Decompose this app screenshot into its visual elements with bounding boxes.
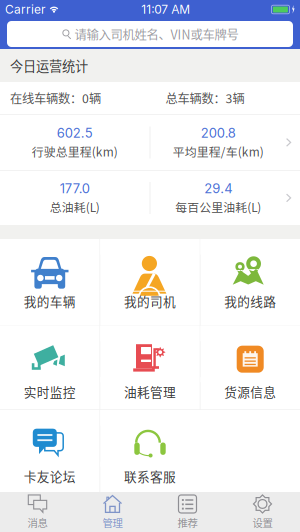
staticText: 卡友论坛 <box>24 467 76 485</box>
staticText: 602.5 <box>57 125 93 141</box>
staticText: 每百公里油耗(L) <box>175 198 261 215</box>
staticText: 货源信息 <box>224 382 276 400</box>
button[interactable]: 请输入司机姓名、VIN或车牌号 <box>7 21 293 47</box>
button[interactable]: 推荐 <box>150 492 225 532</box>
staticText: 推荐 <box>177 515 197 530</box>
button[interactable]: 设置 <box>225 492 300 532</box>
button[interactable]: 我的司机 <box>100 239 200 325</box>
staticText: 200.8 <box>201 125 236 141</box>
staticText: Carrier <box>5 2 46 17</box>
staticText: 消息 <box>27 515 47 530</box>
button[interactable]: 卡友论坛 <box>0 410 100 492</box>
staticText: 在线车辆数：0辆 <box>10 89 101 107</box>
staticText: 总车辆数：3辆 <box>165 89 244 107</box>
staticText: 29.4 <box>204 180 232 196</box>
staticText: 平均里程/车(km) <box>173 143 264 160</box>
staticText: 今日运营统计 <box>10 56 88 75</box>
button[interactable]: 我的车辆 <box>0 239 100 325</box>
staticText: 设置 <box>252 515 272 530</box>
staticText: 我的线路 <box>224 292 276 310</box>
staticText: 油耗管理 <box>124 382 176 400</box>
staticText: 管理 <box>102 515 122 530</box>
staticText: 177.0 <box>60 180 90 196</box>
staticText: 总油耗(L) <box>50 198 100 215</box>
button[interactable]: 实时监控 <box>0 325 100 409</box>
button[interactable]: 管理 <box>75 492 150 532</box>
button[interactable]: 消息 <box>0 492 75 532</box>
button[interactable]: 我的线路 <box>200 239 300 325</box>
staticText: 行驶总里程(km) <box>32 143 118 160</box>
button[interactable]: 联系客服 <box>100 410 200 492</box>
button[interactable]: 油耗管理 <box>100 325 200 409</box>
staticText: 请输入司机姓名、VIN或车牌号 <box>74 25 238 43</box>
staticText: 我的司机 <box>124 292 176 310</box>
staticText: 我的车辆 <box>24 292 76 310</box>
staticText: 11:07 AM <box>141 2 190 17</box>
button[interactable]: 货源信息 <box>200 325 300 409</box>
staticText: 联系客服 <box>124 467 176 485</box>
staticText: 实时监控 <box>24 382 76 400</box>
